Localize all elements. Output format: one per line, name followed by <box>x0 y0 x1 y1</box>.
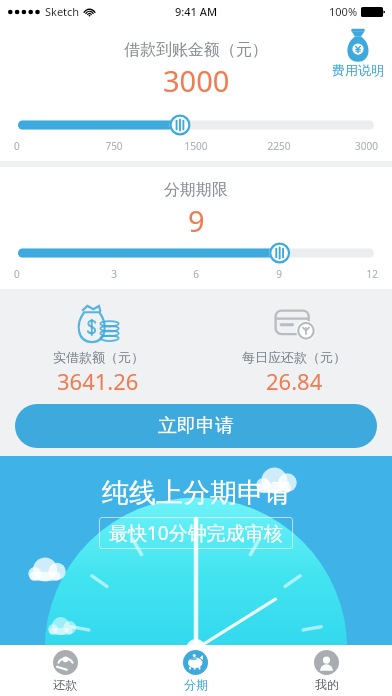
staticText: 9:41 AM <box>175 4 218 19</box>
button[interactable]: 费用说明 <box>330 28 386 78</box>
staticText: 借款到账金额（元） <box>124 40 268 60</box>
staticText: 12 <box>344 267 378 281</box>
button[interactable]: 纯线上分期申请 <box>0 456 392 645</box>
staticText: 纯线上分期申请 <box>102 476 291 510</box>
button[interactable]: 我的 <box>261 645 392 696</box>
staticText: 0 <box>14 139 48 153</box>
staticText: 9 <box>262 267 296 281</box>
staticText: 还款 <box>53 677 77 692</box>
staticText: 1500 <box>179 139 213 153</box>
button[interactable]: 立即申请 <box>15 404 377 448</box>
staticText: 100% <box>329 4 358 19</box>
staticText: 最快10分钟完成审核 <box>109 520 283 546</box>
staticText: 3000 <box>344 139 378 153</box>
staticText: 分期 <box>184 677 208 692</box>
staticText: 750 <box>97 139 131 153</box>
staticText: 3000 <box>163 61 230 100</box>
staticText: 我的 <box>315 677 339 692</box>
staticText: 立即申请 <box>158 414 234 438</box>
button[interactable]: Adjust slider <box>18 242 374 264</box>
staticText: 每日应还款（元） <box>242 349 346 365</box>
button[interactable]: 分期 <box>130 645 261 696</box>
staticText: 3 <box>97 267 131 281</box>
staticText: 分期期限 <box>164 180 228 200</box>
staticText: Sketch <box>45 4 80 19</box>
staticText: 3641.26 <box>57 366 139 396</box>
staticText: 0 <box>14 267 48 281</box>
staticText: 费用说明 <box>332 62 384 78</box>
staticText: 26.84 <box>266 366 323 396</box>
staticText: 实借款额（元） <box>53 349 144 365</box>
staticText: 2250 <box>262 139 296 153</box>
staticText: 6 <box>179 267 213 281</box>
button[interactable]: 还款 <box>0 645 130 696</box>
button[interactable]: Adjust slider <box>18 114 374 136</box>
staticText: 9 <box>188 201 205 240</box>
